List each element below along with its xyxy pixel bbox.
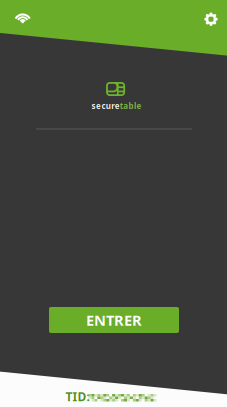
- staticText: ENTRER: [86, 310, 142, 330]
- button[interactable]: Settings: [204, 12, 218, 26]
- staticText: secure: [92, 101, 120, 111]
- button[interactable]: Wi-Fi: [15, 11, 31, 23]
- button[interactable]: ENTRER: [49, 307, 179, 333]
- staticText: TID:: [65, 388, 89, 404]
- staticText: table: [120, 101, 141, 111]
